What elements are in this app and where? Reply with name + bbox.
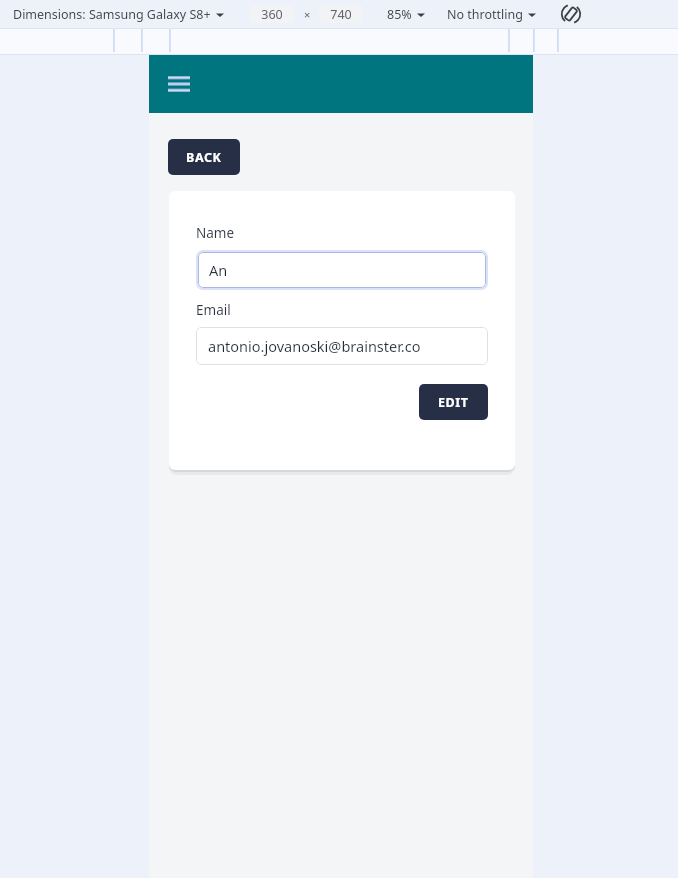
- staticText: 360: [261, 6, 283, 23]
- staticText: Name: [196, 224, 235, 242]
- staticText: antonio.jovanoski@brainster.co: [208, 336, 421, 356]
- staticText: An: [209, 260, 228, 280]
- button[interactable]: 85%: [385, 4, 427, 25]
- button[interactable]: 740: [319, 5, 363, 23]
- staticText: ×: [304, 7, 311, 22]
- staticText: 85%: [387, 6, 412, 23]
- staticText: No throttling: [447, 6, 523, 23]
- button[interactable]: Dimensions: Samsung Galaxy S8+: [11, 4, 226, 25]
- button[interactable]: EDIT: [419, 384, 488, 420]
- button[interactable]: Open navigation menu: [164, 69, 194, 99]
- button[interactable]: Rotate device orientation: [558, 1, 584, 27]
- button[interactable]: BACK: [168, 139, 240, 175]
- button[interactable]: An: [198, 252, 486, 288]
- staticText: Dimensions: Samsung Galaxy S8+: [13, 6, 211, 23]
- button[interactable]: 360: [250, 5, 294, 23]
- staticText: EDIT: [438, 394, 469, 411]
- staticText: BACK: [186, 149, 222, 166]
- button[interactable]: No throttling: [445, 4, 538, 25]
- staticText: 740: [330, 6, 352, 23]
- button[interactable]: antonio.jovanoski@brainster.co: [196, 327, 488, 365]
- staticText: Email: [196, 301, 231, 319]
